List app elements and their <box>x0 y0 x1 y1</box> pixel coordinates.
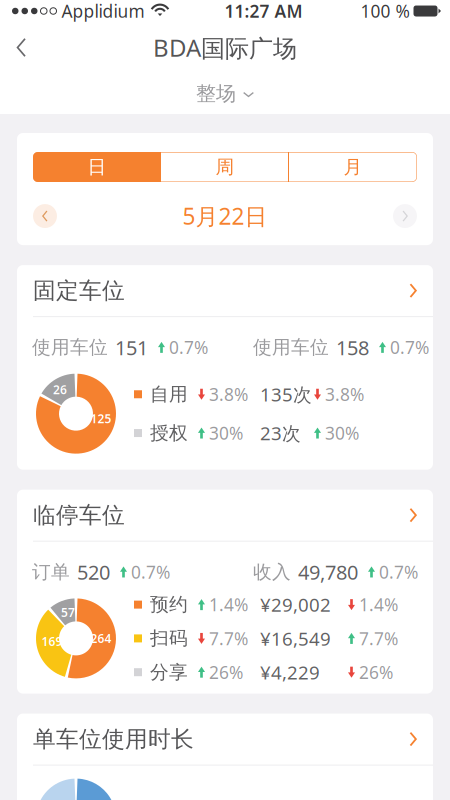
staticText: 预约 <box>150 593 188 616</box>
button[interactable]: 固定车位 <box>17 265 433 316</box>
staticText: 自用 <box>150 383 188 406</box>
staticText: 单车位使用时长 <box>33 725 194 753</box>
staticText: 1.4% <box>359 593 398 616</box>
staticText: 固定车位 <box>33 277 125 304</box>
staticText: BDA国际广场 <box>153 31 297 63</box>
staticText: 169 <box>41 633 62 649</box>
button[interactable]: 周 <box>161 152 289 182</box>
staticText: 57 <box>61 604 75 620</box>
staticText: 扫码 <box>150 627 188 650</box>
staticText: 周 <box>215 155 234 178</box>
button[interactable]: 临停车位 <box>17 490 433 541</box>
staticText: 3.8% <box>209 383 248 406</box>
staticText: 11:27 AM <box>224 0 302 22</box>
staticText: 7.7% <box>209 627 248 650</box>
staticText: 0.7% <box>169 336 208 359</box>
button[interactable]: Back <box>0 25 43 70</box>
staticText: 49,780 <box>298 559 358 585</box>
button[interactable]: Previous day <box>33 204 57 228</box>
button[interactable]: 月 <box>289 152 417 182</box>
staticText: ¥29,002 <box>260 592 331 617</box>
button[interactable]: 单车位使用时长 <box>17 714 433 765</box>
staticText: 0.7% <box>379 560 418 583</box>
staticText: 分享 <box>150 661 188 684</box>
button[interactable]: Next day <box>393 204 417 228</box>
staticText: 收入 <box>253 560 291 583</box>
staticText: 0.7% <box>131 560 170 583</box>
staticText: 0.7% <box>390 336 429 359</box>
staticText: 使用车位 <box>253 336 329 359</box>
staticText: 23次 <box>260 421 301 445</box>
staticText: ¥4,229 <box>260 660 320 685</box>
staticText: 135次 <box>260 382 312 407</box>
staticText: 临停车位 <box>33 501 125 529</box>
staticText: 151 <box>115 334 148 361</box>
staticText: 520 <box>77 559 110 585</box>
staticText: 1.4% <box>209 593 248 616</box>
staticText: 26% <box>209 661 243 684</box>
staticText: 264 <box>90 630 111 646</box>
staticText: 125 <box>90 411 111 427</box>
staticText: 整场 <box>196 81 236 106</box>
staticText: 授权 <box>150 422 188 444</box>
staticText: 月 <box>343 155 362 178</box>
button[interactable]: 整场 <box>0 73 450 114</box>
staticText: 日 <box>87 155 106 178</box>
staticText: 30% <box>325 421 359 444</box>
staticText: 158 <box>336 334 369 361</box>
staticText: 7.7% <box>359 627 398 650</box>
button[interactable]: 日 <box>33 152 161 182</box>
staticText: 26 <box>53 382 67 398</box>
staticText: 5月22日 <box>182 201 267 231</box>
staticText: 3.8% <box>325 383 364 406</box>
staticText: 订单 <box>32 560 70 583</box>
staticText: Applidium <box>61 0 144 22</box>
staticText: 100 % <box>360 0 409 22</box>
staticText: 使用车位 <box>32 336 108 359</box>
staticText: 26% <box>359 661 393 684</box>
staticText: ¥16,549 <box>260 626 331 651</box>
staticText: 30% <box>209 421 243 444</box>
